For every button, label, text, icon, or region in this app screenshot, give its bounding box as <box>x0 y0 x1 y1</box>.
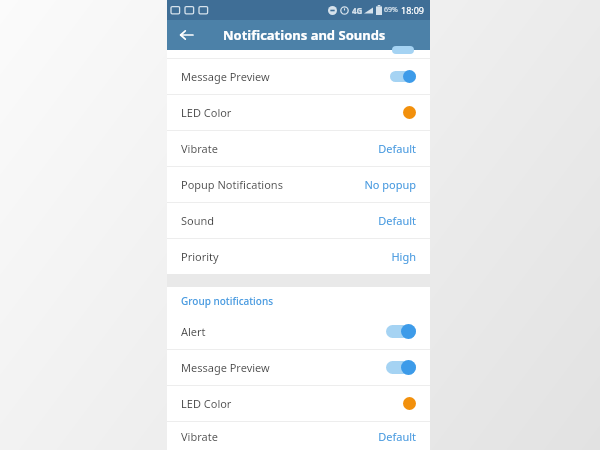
staticText: High <box>391 249 416 264</box>
staticText: 69% <box>384 5 398 15</box>
button[interactable]: Vibrate <box>167 422 430 450</box>
staticText: Message Preview <box>181 69 390 84</box>
staticText: LED Color <box>181 105 403 120</box>
staticText: Notifications and Sounds <box>223 26 386 44</box>
staticText: Sound <box>181 213 378 228</box>
staticText: Priority <box>181 249 391 264</box>
staticText: 18:09 <box>401 4 425 16</box>
button[interactable]: Vibrate <box>167 131 430 166</box>
button[interactable]: Message Preview <box>167 350 430 385</box>
staticText: Vibrate <box>181 429 378 444</box>
staticText: 4G <box>352 5 363 16</box>
button[interactable]: Message Preview <box>167 59 430 94</box>
staticText: Message Preview <box>181 360 386 375</box>
staticText: Popup Notifications <box>181 177 364 192</box>
staticText: Group notifications <box>181 294 274 308</box>
button[interactable]: Sound <box>167 203 430 238</box>
staticText: Default <box>378 141 416 156</box>
button[interactable]: Popup Notifications <box>167 167 430 202</box>
staticText: Default <box>378 429 416 444</box>
staticText: Alert <box>181 324 386 339</box>
staticText: No popup <box>364 177 416 192</box>
staticText: Vibrate <box>181 141 378 156</box>
staticText: Default <box>378 213 416 228</box>
button[interactable]: LED Color <box>167 95 430 130</box>
button[interactable]: Alert <box>167 314 430 349</box>
button[interactable]: LED Color <box>167 386 430 421</box>
button[interactable]: Priority <box>167 239 430 274</box>
button[interactable]: Back <box>175 24 197 46</box>
staticText: LED Color <box>181 396 403 411</box>
